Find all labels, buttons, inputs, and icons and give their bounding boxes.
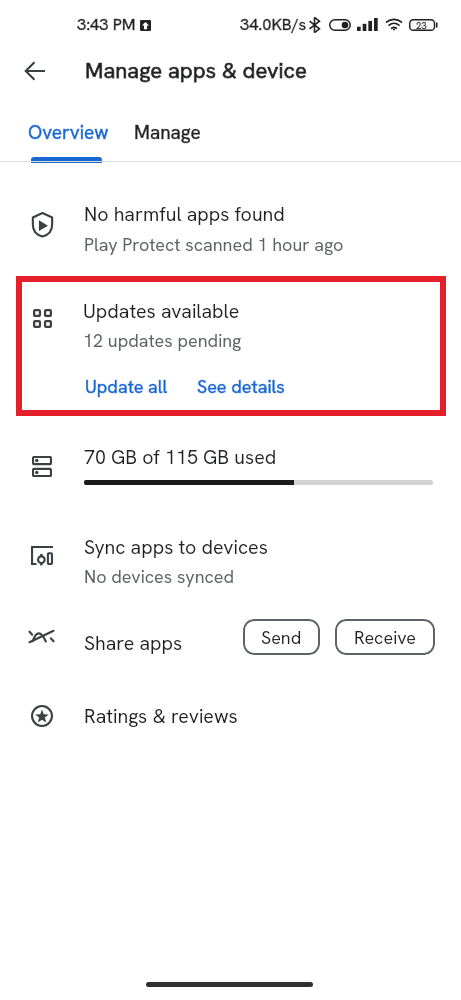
staticText: 23 <box>416 19 427 31</box>
staticText: Play Protect scanned 1 hour ago <box>84 233 344 256</box>
staticText: Manage <box>134 120 201 145</box>
staticText: 3:43 PM <box>77 14 136 35</box>
staticText: No devices synced <box>84 565 235 588</box>
button[interactable]: Overview <box>0 112 132 161</box>
staticText: Send <box>261 626 302 649</box>
button[interactable]: Sync apps to devices <box>0 524 461 594</box>
button[interactable] <box>0 612 461 672</box>
staticText: Manage apps & device <box>85 56 307 85</box>
staticText: Share apps <box>84 630 183 656</box>
staticText: 23 <box>416 19 427 31</box>
button[interactable]: Ratings & reviews <box>0 694 461 742</box>
button[interactable]: No harmful apps found <box>0 192 461 262</box>
staticText: 3:43 PM <box>77 14 136 35</box>
staticText: Receive <box>354 626 417 649</box>
staticText: Sync apps to devices <box>84 534 268 560</box>
staticText: Manage apps & device <box>85 56 307 85</box>
button[interactable]: Send <box>243 619 320 655</box>
button[interactable]: Receive <box>335 619 435 655</box>
button[interactable]: Back <box>10 47 58 95</box>
staticText: Update all <box>85 375 168 398</box>
staticText: 34.0KB/s <box>240 14 307 35</box>
staticText: No harmful apps found <box>84 201 285 227</box>
staticText: Ratings & reviews <box>84 703 238 729</box>
staticText: 34.0KB/s <box>240 14 307 35</box>
staticText: Manage <box>134 120 201 145</box>
button[interactable]: Updates available <box>16 276 446 416</box>
button[interactable]: Manage <box>132 112 263 161</box>
staticText: Overview <box>28 120 109 145</box>
staticText: 12 updates pending <box>83 329 242 352</box>
button[interactable]: 70 GB of 115 GB used <box>0 434 461 496</box>
staticText: Overview <box>28 120 109 145</box>
staticText: 70 GB of 115 GB used <box>84 444 277 470</box>
staticText: See details <box>197 375 285 398</box>
staticText: Updates available <box>83 298 240 324</box>
staticText: Update all <box>85 375 168 398</box>
staticText: See details <box>197 375 285 398</box>
